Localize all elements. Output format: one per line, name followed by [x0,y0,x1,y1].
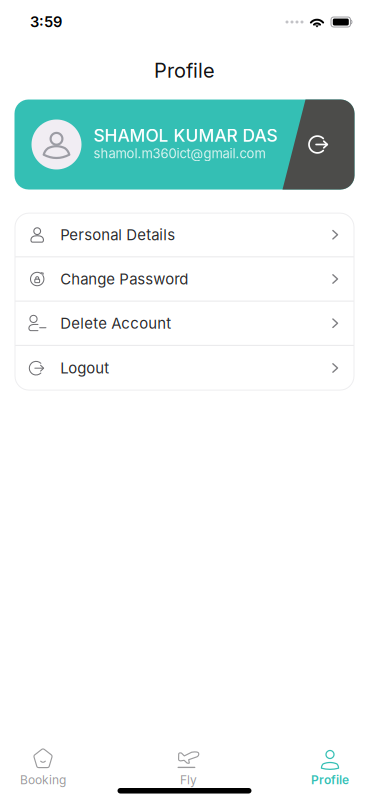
staticText: Profile [154,58,215,83]
staticText: Delete Account [60,314,171,332]
staticText: SHAMOL KUMAR DAS [93,125,277,146]
button[interactable]: Profile [310,738,350,788]
staticText: Profile [311,772,349,787]
button[interactable]: Change Password [15,257,354,302]
staticText: Booking [20,772,66,787]
staticText: 3:59 [30,13,62,31]
button[interactable]: Personal Details [15,213,354,257]
button[interactable]: Fly [176,738,200,788]
button[interactable]: Logout [15,346,354,390]
staticText: Personal Details [60,226,175,244]
staticText: Logout [60,359,109,377]
button[interactable]: Delete Account [15,302,354,346]
staticText: Change Password [60,270,188,288]
button[interactable]: Booking [19,738,67,788]
staticText: Fly [180,772,197,787]
staticText: shamol.m360ict@gmail.com [93,146,265,161]
